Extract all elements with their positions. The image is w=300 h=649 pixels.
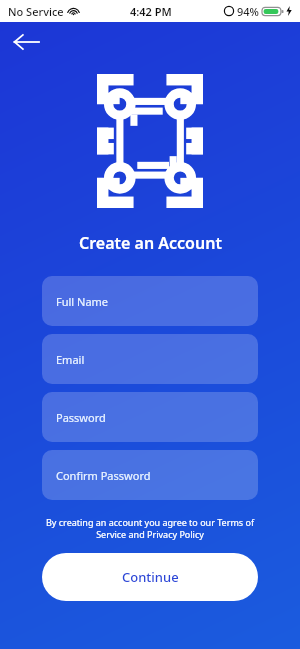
staticText: 94% [237, 4, 259, 19]
button[interactable]: Full Name [42, 276, 258, 326]
staticText: Password [56, 410, 106, 425]
staticText: Email [56, 352, 85, 367]
button[interactable]: Confirm Password [42, 450, 258, 500]
staticText: Full Name [56, 294, 109, 309]
button[interactable]: Email [42, 334, 258, 384]
staticText: No Service [8, 4, 64, 19]
staticText: Continue [122, 568, 179, 586]
staticText: 4:42 PM [130, 4, 172, 19]
button[interactable]: Continue [42, 553, 258, 601]
staticText: By creating an account you agree to our … [34, 516, 266, 541]
staticText: Confirm Password [56, 468, 151, 483]
button[interactable]: Back [0, 22, 52, 62]
staticText: Create an Account [79, 232, 222, 254]
button[interactable]: Password [42, 392, 258, 442]
